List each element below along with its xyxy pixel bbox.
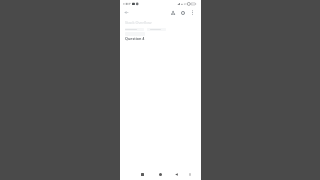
button[interactable]: Overview <box>138 170 147 179</box>
staticText: Question 4 <box>125 36 145 41</box>
button[interactable]: Share <box>168 8 177 17</box>
button[interactable]: Refresh <box>178 8 187 17</box>
button[interactable]: Hide navigation bar <box>185 170 194 179</box>
button[interactable]: Home <box>156 170 165 179</box>
button[interactable]: Asked meta <box>125 27 144 31</box>
staticText: Stack Overflow <box>125 20 152 25</box>
button[interactable]: Back <box>122 8 131 17</box>
button[interactable]: More options <box>188 8 197 17</box>
button[interactable]: Viewed meta <box>147 27 166 31</box>
button[interactable]: Back <box>172 170 181 179</box>
